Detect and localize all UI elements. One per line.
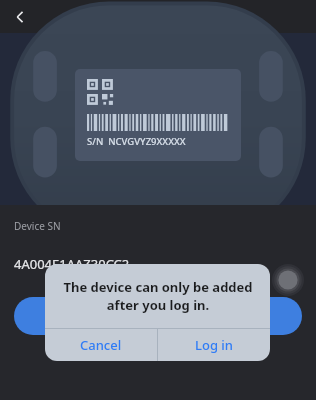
button[interactable]: Next	[14, 297, 302, 335]
staticText: 4A004E1AAZ30CC2	[14, 255, 130, 273]
staticText: Cancel	[80, 336, 122, 354]
staticText: Device SN	[14, 219, 61, 233]
button[interactable]: Back	[0, 0, 40, 33]
staticText: Next	[143, 307, 173, 325]
staticText: The device can only be added after you l…	[63, 278, 253, 314]
staticText: Log in	[195, 336, 233, 354]
staticText: S/N NCVGVYZ9XXXXX	[87, 135, 186, 148]
button[interactable]: Log in	[158, 329, 270, 361]
button[interactable]: Cancel	[45, 329, 157, 361]
